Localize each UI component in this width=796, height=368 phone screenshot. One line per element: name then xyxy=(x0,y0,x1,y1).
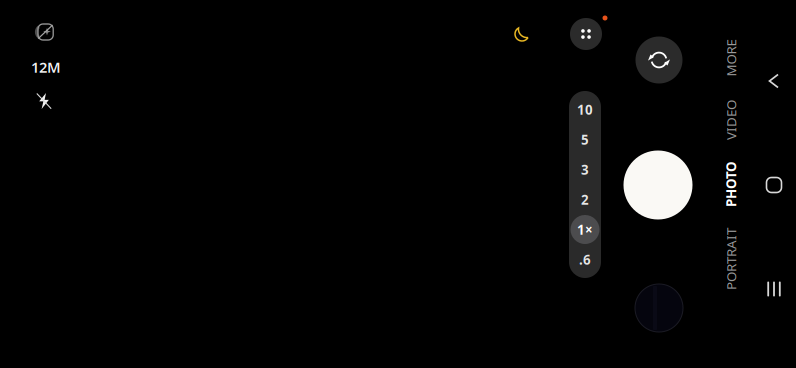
staticText: PHOTO xyxy=(708,175,754,193)
button[interactable]: 12M xyxy=(24,50,64,84)
button[interactable]: Home xyxy=(756,164,792,206)
button[interactable]: More settings xyxy=(570,18,602,50)
button[interactable]: 3 xyxy=(569,154,601,184)
staticText: 3 xyxy=(581,161,589,178)
button[interactable]: Take photo xyxy=(623,150,692,219)
button[interactable]: 5 xyxy=(569,124,601,154)
staticText: MORE xyxy=(712,49,749,67)
button[interactable]: Night mode xyxy=(505,17,539,51)
button[interactable]: Camera preview, tap to focus xyxy=(0,0,796,368)
button[interactable]: Back xyxy=(756,60,792,102)
button[interactable]: 10 xyxy=(569,94,601,124)
button[interactable]: 2 xyxy=(569,184,601,214)
staticText: .6 xyxy=(579,251,591,268)
button[interactable]: PHOTO xyxy=(718,154,744,214)
button[interactable]: PORTRAIT xyxy=(718,219,744,299)
button[interactable]: .6 xyxy=(569,244,601,274)
button[interactable]: Switch camera xyxy=(635,36,682,83)
staticText: PORTRAIT xyxy=(700,250,762,268)
button[interactable]: VIDEO xyxy=(718,90,744,150)
button[interactable]: Recents xyxy=(756,268,792,310)
button[interactable]: MORE xyxy=(718,28,744,88)
button[interactable]: Gallery xyxy=(635,284,683,332)
staticText: VIDEO xyxy=(711,111,751,129)
staticText: 2 xyxy=(581,191,589,208)
staticText: 5 xyxy=(581,131,589,148)
staticText: 1× xyxy=(577,221,593,238)
button[interactable]: Scene optimizer off xyxy=(24,16,64,50)
staticText: 10 xyxy=(577,101,593,118)
button[interactable]: Flash off xyxy=(24,84,64,118)
staticText: 12M xyxy=(31,57,61,77)
